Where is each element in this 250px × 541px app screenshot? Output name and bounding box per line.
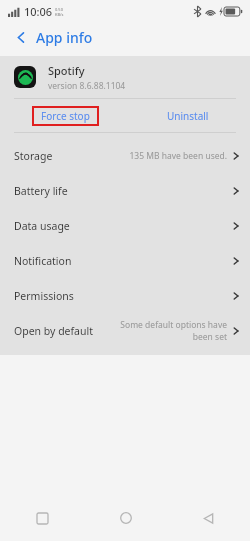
button[interactable]: Notification — [0, 243, 250, 278]
staticText: Open by default — [14, 324, 94, 338]
staticText: Permissions — [14, 289, 74, 303]
staticText: Force stop — [41, 109, 90, 123]
staticText: Battery life — [14, 184, 68, 198]
button[interactable]: Back — [167, 495, 250, 541]
staticText: App info — [36, 28, 93, 47]
staticText: KB/s — [55, 12, 64, 17]
staticText: 10:06 — [24, 4, 53, 19]
button[interactable]: Open by default — [0, 313, 250, 348]
staticText: Uninstall — [167, 109, 209, 123]
staticText: Some default options have been set — [119, 319, 227, 343]
button[interactable]: Force stop — [41, 109, 90, 123]
staticText: version 8.6.88.1104 — [48, 80, 126, 92]
button[interactable]: Uninstall — [125, 99, 250, 132]
button[interactable]: Battery life — [0, 173, 250, 208]
button[interactable]: Back — [10, 26, 32, 48]
staticText: Spotify — [48, 63, 85, 78]
staticText: Storage — [14, 149, 53, 163]
button[interactable]: Recent apps — [0, 495, 84, 541]
staticText: 135 MB have been used. — [129, 150, 227, 162]
button[interactable]: Permissions — [0, 278, 250, 313]
staticText: Notification — [14, 254, 72, 268]
staticText: Data usage — [14, 219, 70, 233]
button[interactable]: Data usage — [0, 208, 250, 243]
button[interactable]: Storage — [0, 138, 250, 173]
staticText: 0.50 — [55, 7, 63, 12]
button[interactable]: Home — [84, 495, 167, 541]
